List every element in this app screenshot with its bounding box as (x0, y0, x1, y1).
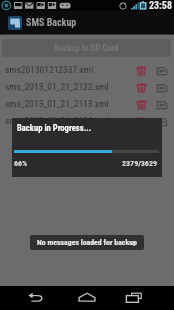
staticText: 2379/3629 (122, 159, 157, 168)
button[interactable]: Restore backup file (156, 116, 168, 128)
staticText: 66% (14, 159, 28, 168)
staticText: sms_2013_01_21_2122.xml (5, 81, 109, 92)
button[interactable]: Restore backup file (156, 82, 168, 94)
staticText: sms201301212337.xml (5, 64, 94, 75)
button[interactable]: sms_2013_01_21_2113.xml (0, 96, 174, 113)
button[interactable]: Delete backup file (136, 116, 147, 127)
button[interactable]: sms_2013_01_21_2104.xml (0, 113, 174, 130)
staticText: No messages loaded for backup (37, 238, 137, 247)
button[interactable]: Restore backup file (156, 65, 168, 77)
button[interactable]: No messages loaded for backup (37, 238, 137, 247)
button[interactable]: sms_2013_01_21_2122.xml (0, 79, 174, 96)
button[interactable]: Delete backup file (136, 82, 147, 93)
button[interactable]: Restore backup file (156, 99, 168, 111)
button[interactable]: Home (75, 286, 99, 310)
staticText: SMS Backup (26, 17, 77, 29)
staticText: Backup to SD Card (54, 43, 119, 53)
button[interactable]: Recent apps (123, 286, 147, 310)
staticText: sms_2013_01_21_2104.xml (5, 115, 109, 126)
button[interactable]: sms201301212337.xml (0, 62, 174, 79)
staticText: sms_2013_01_21_2113.xml (5, 98, 109, 109)
button[interactable]: Backup to SD Card (2, 39, 171, 57)
staticText: Backup in Progress... (17, 123, 92, 133)
staticText: 23:58 (149, 0, 172, 11)
button[interactable]: Back (23, 286, 47, 310)
button[interactable]: Delete backup file (136, 99, 147, 110)
button[interactable]: Delete backup file (136, 65, 147, 76)
